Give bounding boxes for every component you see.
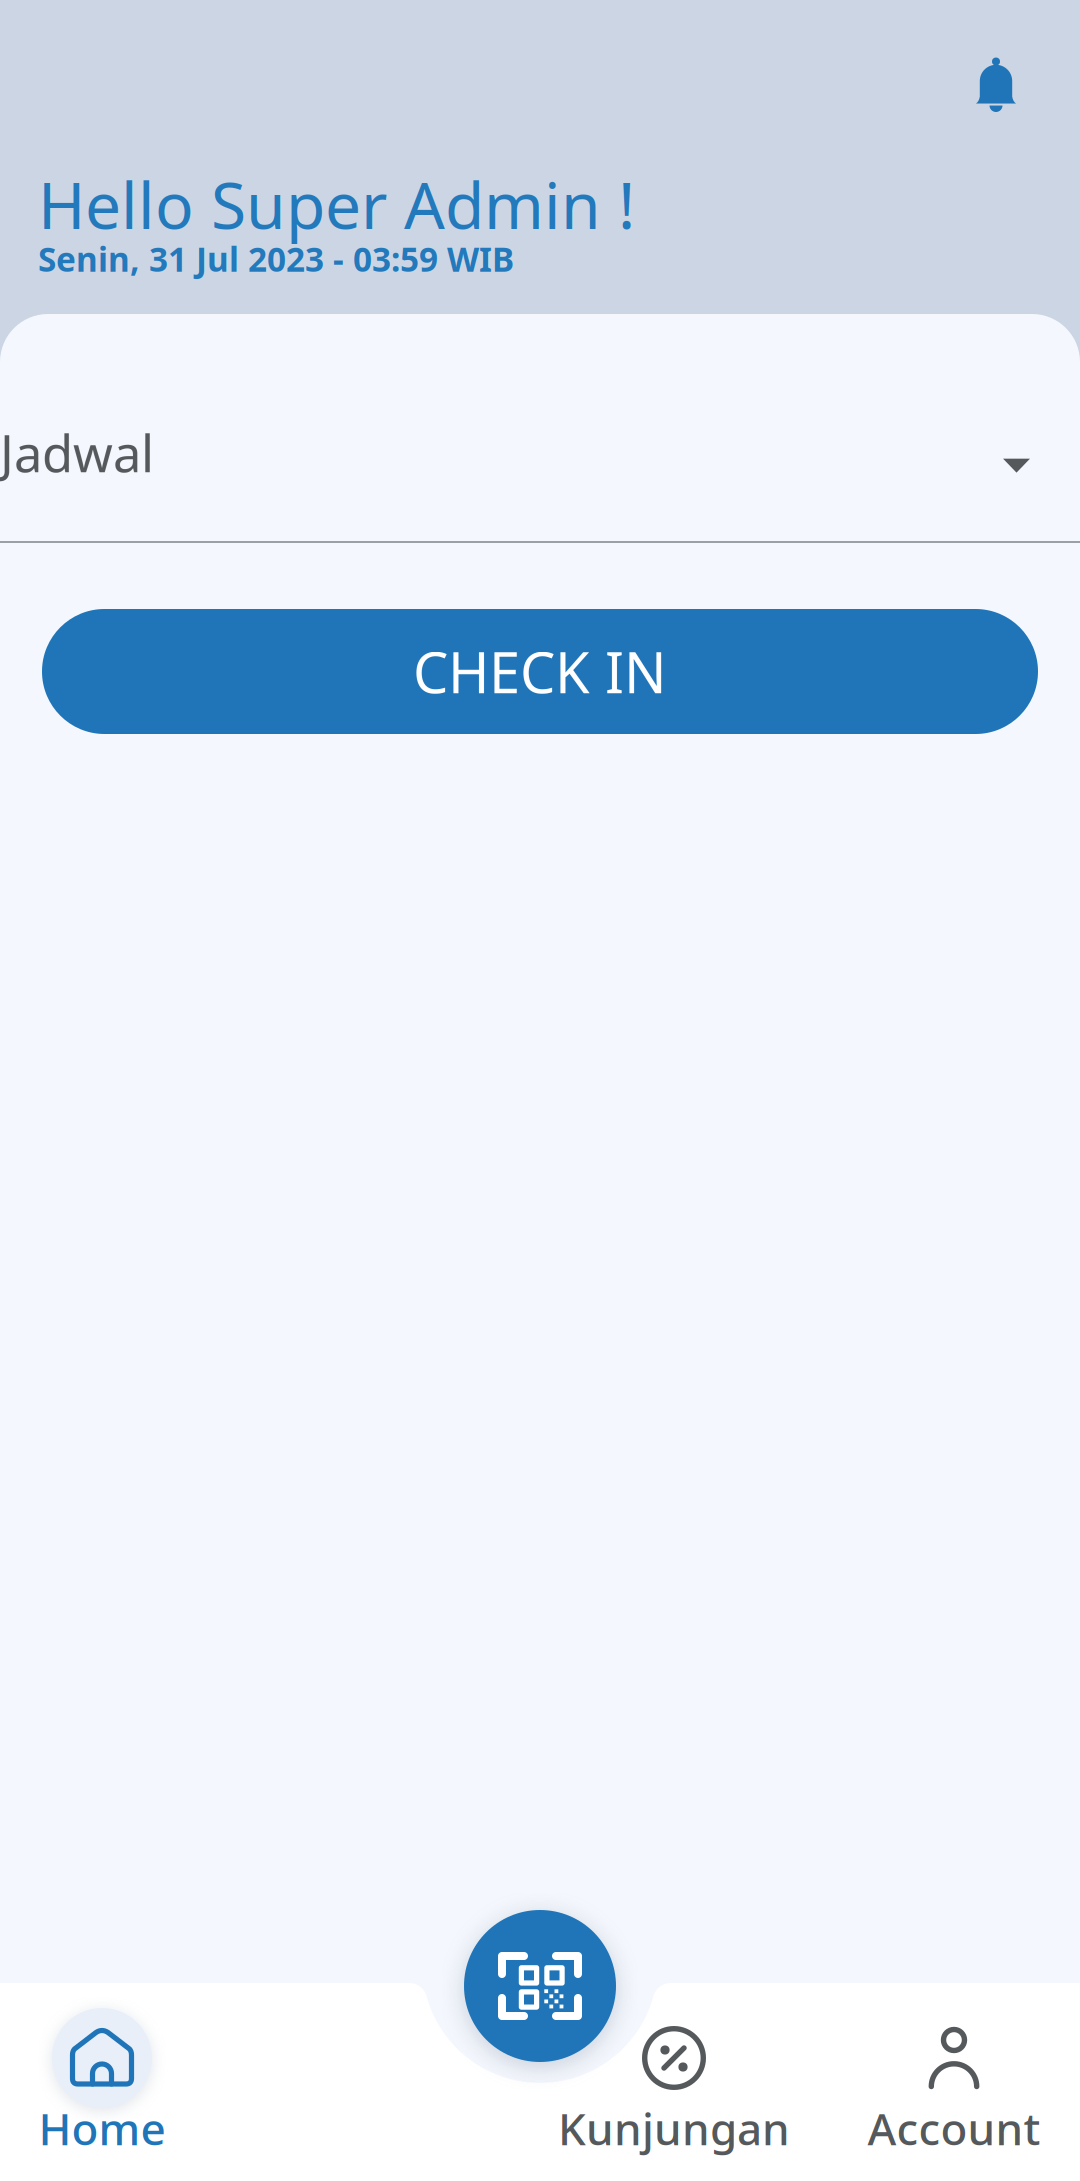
button[interactable]: Account [828,1983,1080,2181]
staticText: Account [867,2099,1040,2157]
staticText: Senin, 31 Jul 2023 - 03:59 WIB [38,237,514,281]
staticText: Hello Super Admin ! [38,162,635,247]
button[interactable]: CHECK IN [42,609,1038,734]
staticText: Home [38,2099,165,2157]
button[interactable]: Scan QR code [464,1910,616,2062]
button[interactable]: Kunjungan [534,1983,814,2181]
button[interactable]: Home [0,1983,204,2181]
staticText: Jadwal [0,419,154,486]
button[interactable]: Jadwal [0,314,1080,541]
button[interactable]: Notifications [957,39,1035,131]
staticText: CHECK IN [413,634,667,709]
staticText: Kunjungan [558,2099,790,2157]
